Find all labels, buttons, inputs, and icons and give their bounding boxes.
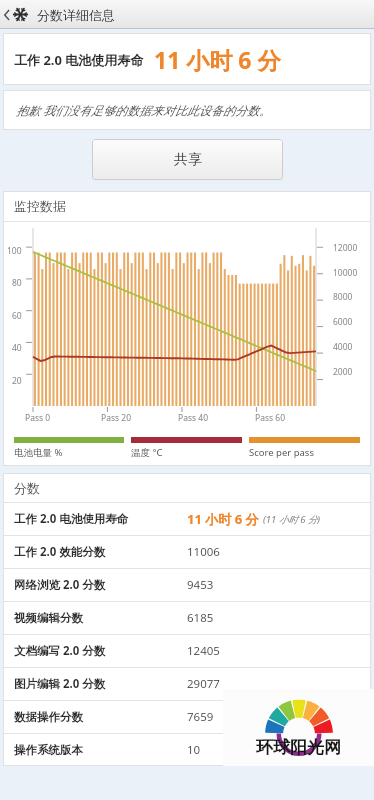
staticText: 40	[12, 342, 22, 354]
staticText: 60	[12, 310, 22, 322]
staticText: 12000	[333, 242, 358, 254]
staticText: 工作 2.0 电池使用寿命	[14, 511, 129, 527]
staticText: Pass 60	[255, 412, 285, 424]
staticText: 工作 2.0 效能分数	[14, 544, 106, 560]
staticText: 2000	[333, 366, 353, 378]
button[interactable]: 操作系统版本	[3, 734, 371, 766]
button[interactable]: 工作 2.0 电池使用寿命	[3, 503, 371, 535]
staticText: 监控数据	[14, 198, 66, 214]
staticText: 视频编辑分数	[14, 611, 83, 625]
button[interactable]: 文档编写 2.0 分数	[3, 635, 371, 667]
staticText: 11006	[187, 544, 220, 560]
staticText: 文档编写 2.0 分数	[14, 643, 106, 659]
button[interactable]: 工作 2.0 效能分数	[3, 536, 371, 568]
staticText: 100	[7, 245, 22, 257]
staticText: 10000	[333, 267, 358, 279]
button[interactable]: 视频编辑分数	[3, 602, 371, 634]
staticText: 分数详细信息	[37, 7, 115, 23]
staticText: 操作系统版本	[14, 743, 83, 757]
staticText: 抱歉 我们没有足够的数据来对比此设备的分数。	[16, 102, 272, 118]
staticText: 80	[12, 277, 22, 289]
staticText: 6000	[333, 316, 353, 328]
staticText: (11 小时 6 分)	[263, 513, 321, 526]
staticText: 29077	[187, 676, 220, 692]
staticText: 环球阳光网	[256, 737, 341, 758]
staticText: 共享	[174, 151, 202, 169]
staticText: 6185	[187, 610, 214, 626]
button[interactable]: 数据操作分数	[3, 701, 371, 733]
staticText: 12405	[187, 643, 220, 659]
button[interactable]: 共享	[92, 139, 283, 180]
staticText: 8000	[333, 291, 353, 303]
button[interactable]: 图片编辑 2.0 分数	[3, 668, 371, 700]
button[interactable]: 网络浏览 2.0 分数	[3, 569, 371, 601]
staticText: Pass 40	[178, 412, 208, 424]
staticText: 20	[12, 375, 22, 387]
staticText: Pass 0	[25, 412, 51, 424]
staticText: Pass 20	[101, 412, 131, 424]
staticText: 10	[187, 742, 201, 758]
staticText: Score per pass	[249, 446, 314, 459]
staticText: 11 小时 6 分	[154, 44, 281, 75]
staticText: 网络浏览 2.0 分数	[14, 577, 106, 593]
staticText: 11 小时 6 分	[187, 510, 259, 528]
staticText: 温度 °C	[131, 446, 163, 459]
staticText: 4000	[333, 341, 353, 353]
button[interactable]: 工作 2.0 电池使用寿命	[3, 33, 371, 85]
staticText: 9453	[187, 577, 214, 593]
button[interactable]: Back	[4, 0, 28, 29]
staticText: 分数	[14, 480, 40, 496]
staticText: 工作 2.0 电池使用寿命	[14, 51, 144, 69]
staticText: 电池电量 %	[14, 446, 63, 459]
staticText: 数据操作分数	[14, 710, 83, 724]
staticText: 图片编辑 2.0 分数	[14, 676, 106, 692]
staticText: 7659	[187, 709, 214, 725]
